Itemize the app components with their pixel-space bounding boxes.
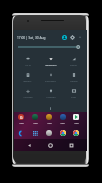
staticText: App [33,121,38,124]
button[interactable]: Signal [64,57,83,71]
button[interactable]: Collapse [78,35,82,39]
staticText: Location [46,95,56,98]
button[interactable]: Flashlight [41,73,60,87]
button[interactable]: Wi-Fi [18,57,37,71]
button[interactable] [60,114,66,120]
button[interactable]: Bluetooth [41,57,60,71]
staticText: G [20,115,23,120]
staticText: Wi-Fi [25,63,31,66]
staticText: Battery [23,79,32,82]
button[interactable]: All apps [32,130,38,136]
button[interactable]: Rotate [64,73,83,87]
staticText: Rotate [70,79,78,82]
staticText: 17:00 | Sat, 30 Aug [17,36,46,40]
staticText: App [19,121,24,124]
button[interactable] [60,130,66,136]
staticText: App [47,121,52,124]
button[interactable]: Back [26,142,33,149]
staticText: Flashlight [45,79,56,82]
staticText: App [74,121,79,124]
button[interactable] [46,130,52,136]
button[interactable] [46,114,52,120]
button[interactable]: Recents [68,142,75,149]
staticText: Cast [71,95,76,98]
button[interactable]: Airplane [18,89,37,103]
button[interactable]: G [18,114,24,120]
button[interactable] [32,114,38,120]
staticText: Signal [70,63,77,66]
button[interactable]: Settings [70,35,75,40]
staticText: Bluetooth [45,63,57,66]
button[interactable] [73,130,79,136]
button[interactable]: User [62,35,67,40]
staticText: Airplane [23,95,33,98]
staticText: App [60,121,65,124]
button[interactable] [73,114,79,120]
button[interactable]: Phone [18,130,24,136]
button[interactable]: Battery [18,73,37,87]
button[interactable]: Home [47,142,54,149]
button[interactable]: Cast [64,89,83,103]
button[interactable]: Location [41,89,60,103]
